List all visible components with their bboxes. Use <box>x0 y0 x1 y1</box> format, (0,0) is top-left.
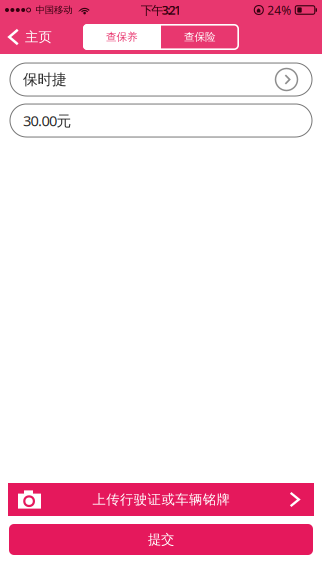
staticText: 下午3:21 <box>141 2 181 18</box>
staticText: 中国移动 <box>36 4 72 16</box>
staticText: 提交 <box>148 531 174 548</box>
staticText: 24% <box>267 2 291 18</box>
button[interactable]: 提交 <box>9 524 313 555</box>
button[interactable]: 查保险 <box>161 24 239 50</box>
staticText: 查保险 <box>184 30 216 43</box>
staticText: 30.00元 <box>23 111 71 130</box>
button[interactable]: 30.00元 <box>10 104 312 137</box>
staticText: 主页 <box>25 29 51 45</box>
staticText: 上传行驶证或车辆铭牌 <box>92 491 230 508</box>
button[interactable]: 主页 <box>0 21 60 52</box>
button[interactable]: 上传行驶证或车辆铭牌 <box>8 483 314 516</box>
button[interactable]: 查保养 <box>83 24 161 50</box>
staticText: 查保养 <box>106 30 138 43</box>
button[interactable]: 保时捷 <box>10 63 312 96</box>
staticText: 保时捷 <box>23 70 67 88</box>
